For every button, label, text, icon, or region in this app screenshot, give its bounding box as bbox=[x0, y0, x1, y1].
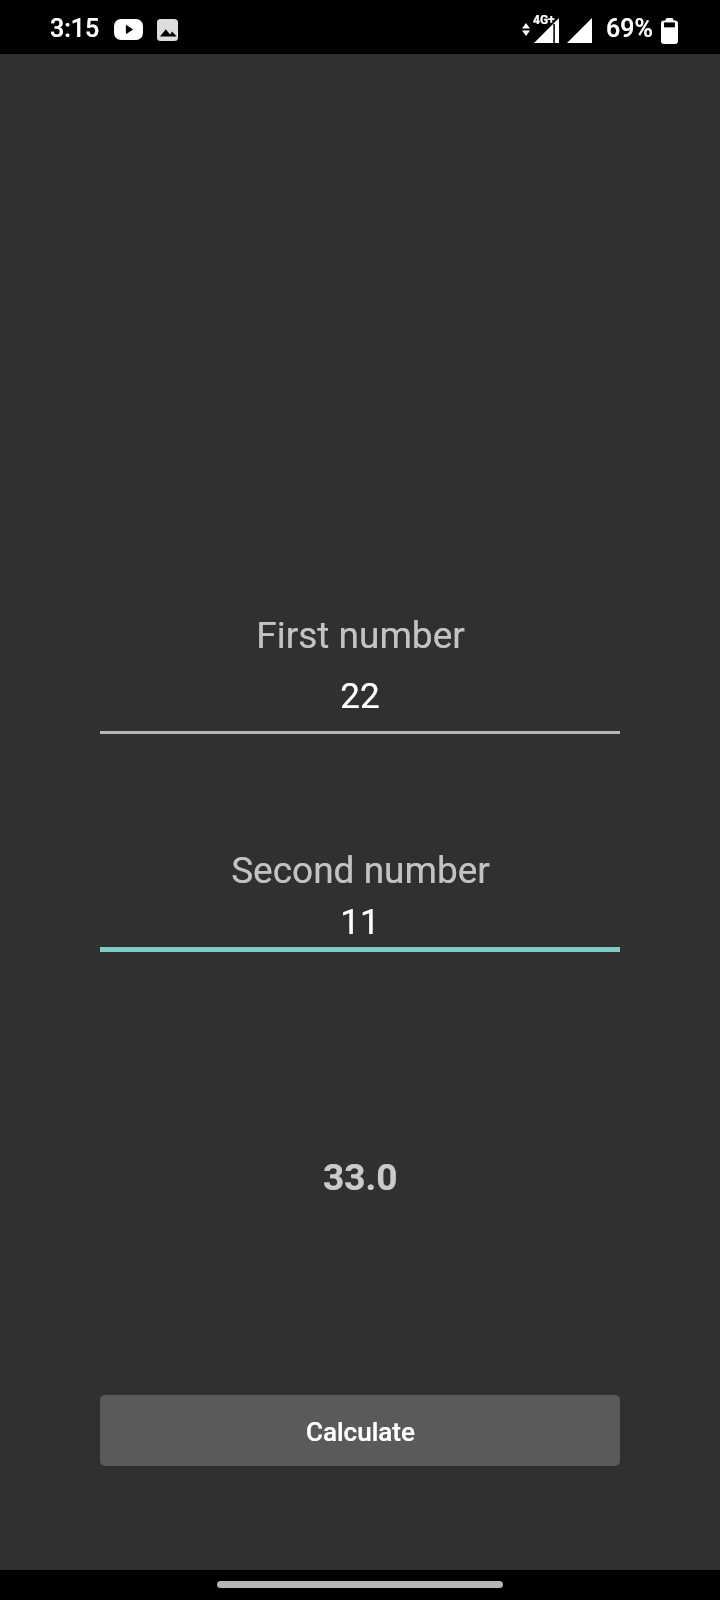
staticText: 69% bbox=[606, 14, 653, 43]
staticText: 22 bbox=[340, 676, 380, 717]
button[interactable]: Calculate bbox=[100, 1395, 620, 1466]
staticText: Second number bbox=[231, 849, 490, 892]
staticText: 3:15 bbox=[50, 14, 100, 43]
staticText: 4G+ bbox=[533, 13, 555, 27]
staticText: 11 bbox=[340, 902, 380, 943]
staticText: First number bbox=[256, 614, 465, 657]
button[interactable]: Second number bbox=[100, 835, 620, 952]
other: Home bbox=[217, 1581, 503, 1588]
staticText: 33.0 bbox=[323, 1156, 398, 1199]
button[interactable]: First number bbox=[100, 600, 620, 734]
staticText: Calculate bbox=[306, 1417, 415, 1447]
